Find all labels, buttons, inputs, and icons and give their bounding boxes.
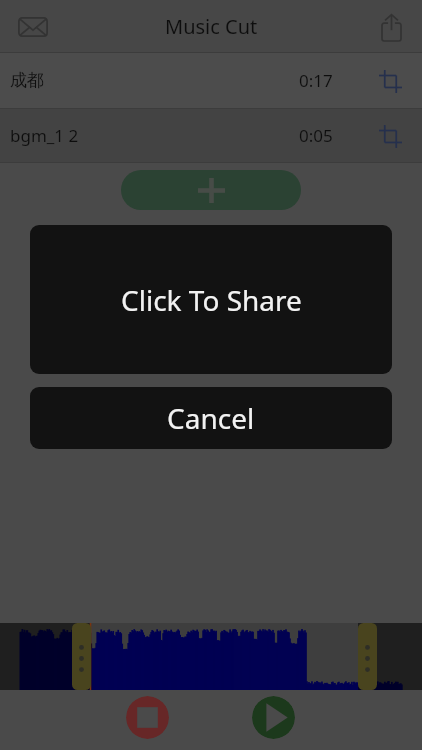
- staticText: bgm_1 2: [10, 124, 79, 147]
- button[interactable]: Stop: [126, 696, 169, 739]
- button[interactable]: Crop: [370, 61, 410, 101]
- button[interactable]: Add track: [121, 170, 301, 210]
- staticText: Music Cut: [165, 13, 258, 40]
- button[interactable]: Click To Share: [30, 225, 392, 374]
- staticText: Cancel: [167, 399, 255, 437]
- button[interactable]: bgm_1 2: [0, 109, 422, 162]
- staticText: 成都: [10, 70, 44, 91]
- button[interactable]: Mail: [11, 5, 55, 49]
- button[interactable]: Play: [252, 696, 295, 739]
- button[interactable]: Share: [369, 5, 413, 49]
- button[interactable]: 成都: [0, 53, 422, 108]
- staticText: 0:05: [299, 124, 333, 147]
- button[interactable]: Cancel: [30, 387, 392, 449]
- button[interactable]: Crop: [370, 116, 410, 156]
- staticText: Click To Share: [121, 281, 302, 319]
- staticText: 0:17: [299, 69, 333, 92]
